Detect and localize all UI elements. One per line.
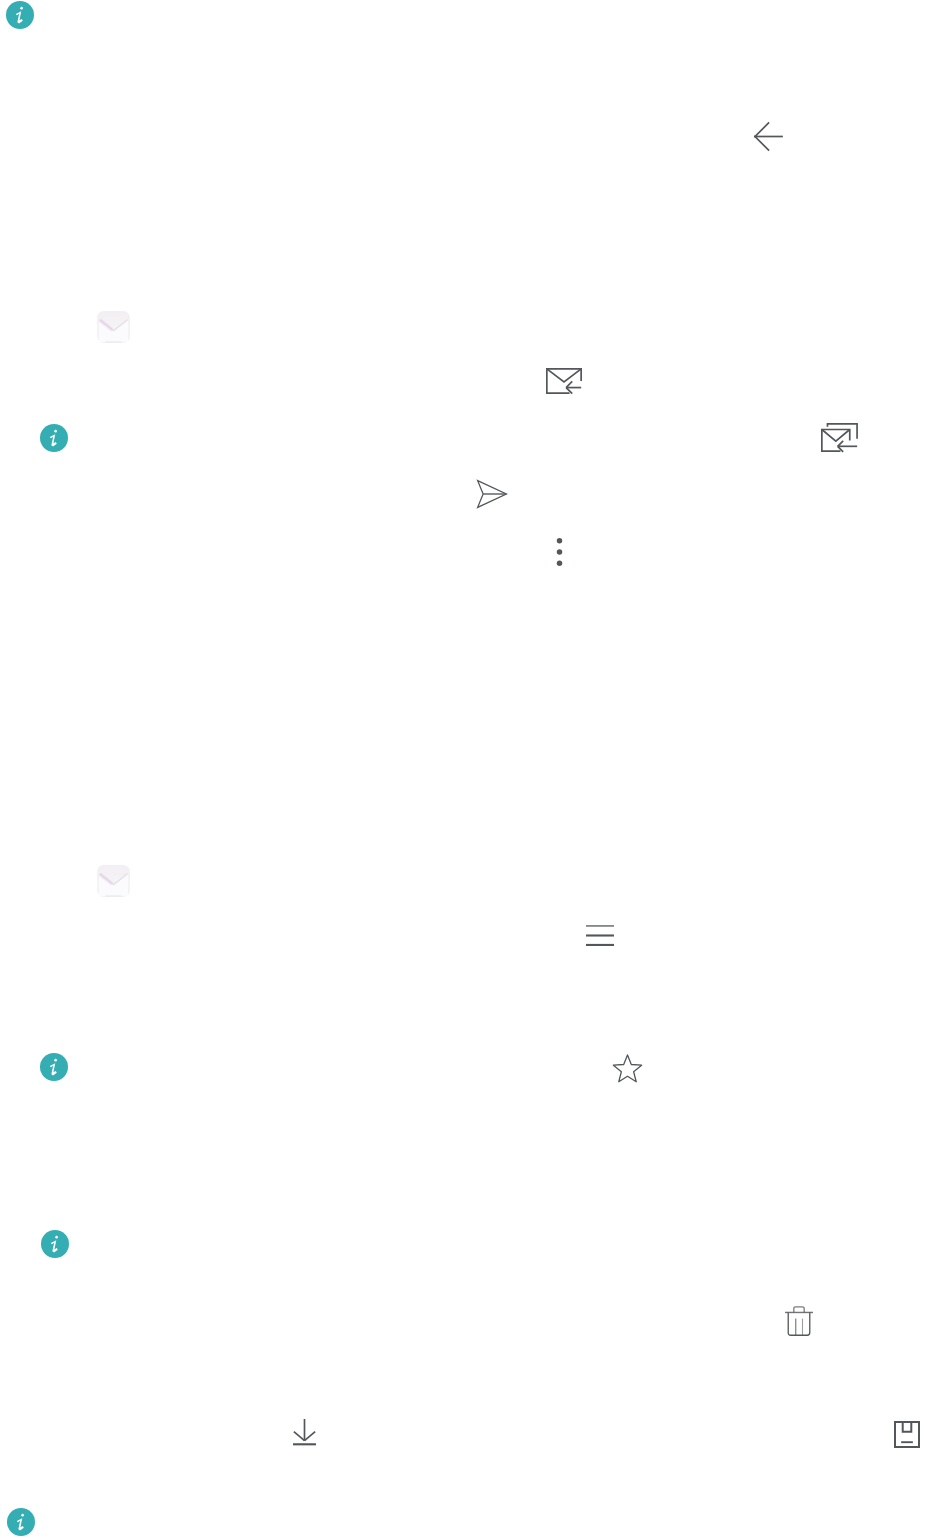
button[interactable]: Download <box>293 1419 316 1446</box>
button[interactable]: Favorite <box>612 1053 643 1084</box>
button[interactable]: Information <box>40 424 68 452</box>
button[interactable]: Save <box>894 1421 920 1448</box>
button[interactable]: Send <box>477 480 507 508</box>
button[interactable]: Mail <box>97 865 130 897</box>
button[interactable]: Reply all <box>821 423 858 452</box>
button[interactable]: Menu <box>586 925 614 946</box>
button[interactable]: Information <box>7 1508 35 1536</box>
button[interactable]: Delete <box>785 1306 813 1336</box>
button[interactable]: More options <box>554 538 565 566</box>
button[interactable]: Back <box>755 123 782 150</box>
button[interactable]: Information <box>6 1 34 29</box>
button[interactable]: Information <box>41 1230 69 1258</box>
button[interactable]: Mail received <box>546 368 582 394</box>
button[interactable]: Information <box>40 1053 68 1081</box>
button[interactable]: Mail <box>97 311 130 343</box>
